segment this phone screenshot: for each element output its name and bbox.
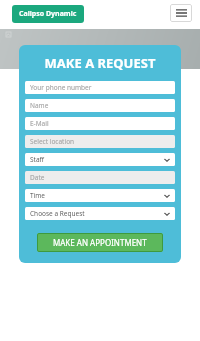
staticText: Staff (30, 155, 45, 164)
staticText: Time (30, 191, 46, 200)
staticText: Date (30, 173, 45, 182)
button[interactable]: Name (25, 99, 175, 112)
button[interactable]: Your phone number (25, 81, 175, 94)
button[interactable]: E-Mail (25, 117, 175, 130)
staticText: E-Mail (30, 119, 49, 128)
button[interactable]: Calipso Dynamic (12, 5, 84, 23)
button[interactable]: Time (25, 189, 175, 202)
staticText: Name (30, 101, 49, 110)
staticText: MAKE A REQUEST (25, 54, 175, 72)
staticText: Your phone number (30, 83, 92, 92)
staticText: MAKE AN APPOINTMENT (53, 237, 147, 248)
staticText: Calipso Dynamic (19, 9, 77, 19)
button[interactable]: MAKE AN APPOINTMENT (37, 233, 163, 252)
button[interactable]: Staff (25, 153, 175, 166)
button[interactable]: Choose a Request (25, 207, 175, 220)
staticText: Choose a Request (30, 209, 85, 218)
button[interactable]: Date (25, 171, 175, 184)
button[interactable]: Menu (170, 4, 192, 22)
button[interactable]: Select location (25, 135, 175, 148)
staticText: Select location (30, 137, 75, 146)
